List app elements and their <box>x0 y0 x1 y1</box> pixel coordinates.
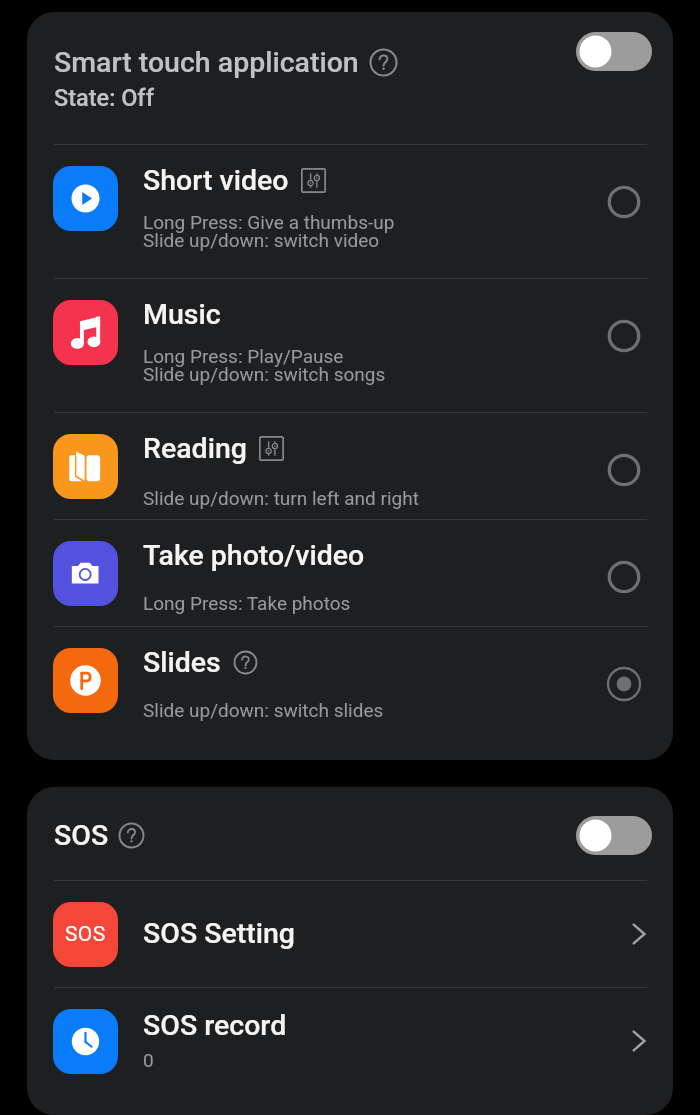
button[interactable]: Select Slides <box>600 660 648 708</box>
staticText: Take photo/video <box>143 539 365 572</box>
staticText: Short video <box>143 164 289 197</box>
staticText: State: Off <box>54 84 154 112</box>
button[interactable]: Toggle SOS <box>576 816 652 855</box>
staticText: SOS Setting <box>143 917 296 950</box>
staticText: SOS <box>54 819 109 852</box>
button[interactable]: Select Short video <box>600 178 648 226</box>
button[interactable]: Select Take photo/video <box>600 553 648 601</box>
button[interactable]: SOS record <box>27 988 673 1094</box>
button[interactable]: Slides <box>27 627 673 734</box>
staticText: Long Press: Give a thumbs-up Slide up/do… <box>143 211 395 251</box>
staticText: Slides <box>143 646 221 679</box>
button[interactable]: Music <box>27 279 673 412</box>
staticText: Reading <box>143 432 247 465</box>
button[interactable]: Short video <box>27 145 673 278</box>
staticText: Long Press: Play/Pause Slide up/down: sw… <box>143 345 386 385</box>
staticText: Long Press: Take photos <box>143 592 351 614</box>
button[interactable]: SOS <box>27 787 673 880</box>
staticText: Slide up/down: switch slides <box>143 699 384 721</box>
staticText: 0 <box>143 1049 154 1071</box>
button[interactable]: Take photo/video <box>27 520 673 626</box>
button[interactable]: Select Reading <box>600 446 648 494</box>
button[interactable]: Reading <box>27 413 673 519</box>
button[interactable]: Select Music <box>600 312 648 360</box>
staticText: Smart touch application <box>54 46 359 79</box>
staticText: Music <box>143 298 221 331</box>
button[interactable]: Smart touch application <box>27 12 673 144</box>
staticText: Slide up/down: turn left and right <box>143 487 419 509</box>
button[interactable]: Toggle Smart touch application <box>576 32 652 71</box>
staticText: SOS <box>65 922 106 947</box>
staticText: SOS record <box>143 1009 287 1042</box>
button[interactable]: SOS <box>27 881 673 987</box>
